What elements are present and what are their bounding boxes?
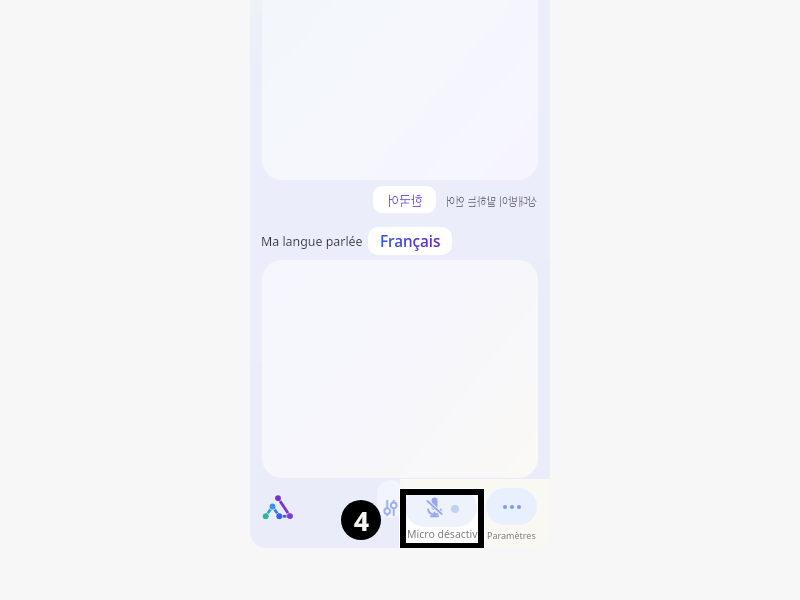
button[interactable]: Audio settings [377, 480, 403, 518]
staticText: Paramètres [487, 529, 536, 541]
staticText: Ma langue parlée [261, 233, 363, 250]
staticText: 상대방이 말하는 언어 [445, 192, 537, 209]
button[interactable]: App logo [256, 490, 298, 528]
button[interactable]: Paramètres [483, 483, 547, 539]
staticText: 한국어 [387, 191, 423, 208]
staticText: Micro désactivé [407, 527, 478, 541]
staticText: Français [380, 231, 441, 252]
button[interactable]: Français [368, 227, 452, 255]
button[interactable]: 한국어 [373, 186, 436, 213]
staticText: 4 [354, 503, 369, 538]
button[interactable]: Micro désactivé [399, 488, 485, 548]
